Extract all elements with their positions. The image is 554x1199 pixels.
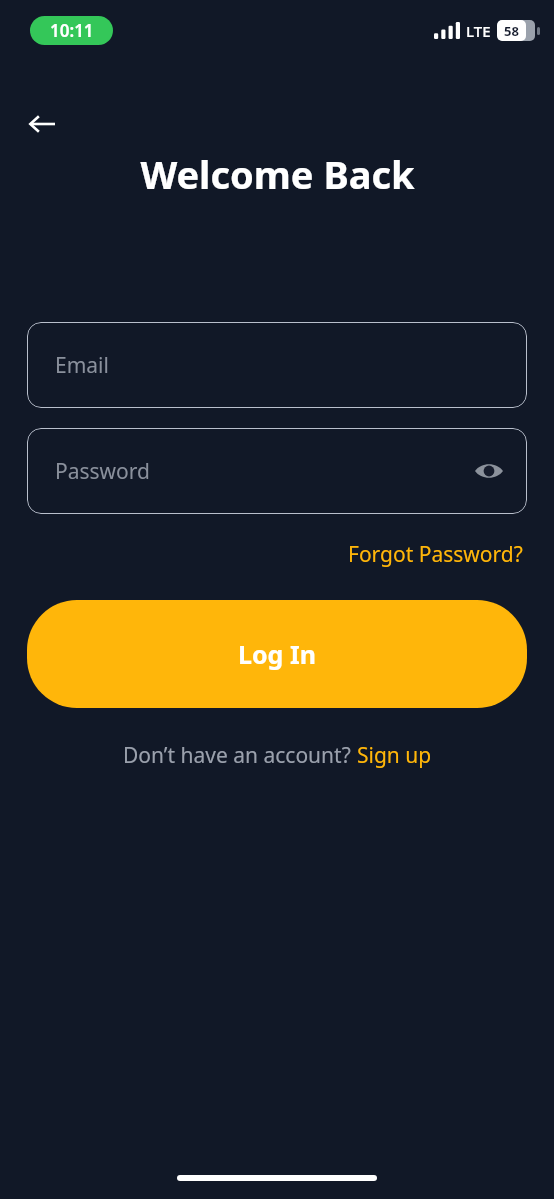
- button[interactable]: Back: [18, 100, 66, 148]
- staticText: 10:11: [50, 19, 94, 42]
- staticText: Don’t have an account?: [123, 741, 357, 770]
- button[interactable]: Show password: [467, 449, 511, 493]
- button[interactable]: Sign up: [357, 741, 432, 770]
- staticText: Email: [55, 351, 109, 380]
- button[interactable]: Email: [27, 322, 527, 408]
- button[interactable]: Forgot Password?: [344, 536, 527, 573]
- button[interactable]: Password: [27, 428, 527, 514]
- staticText: Welcome Back: [140, 148, 415, 200]
- staticText: Sign up: [357, 741, 432, 770]
- button[interactable]: Log In: [27, 600, 527, 708]
- staticText: Forgot Password?: [348, 540, 523, 569]
- staticText: 58: [504, 22, 519, 40]
- staticText: Log In: [238, 637, 316, 671]
- staticText: Password: [55, 457, 150, 486]
- staticText: LTE: [466, 21, 491, 41]
